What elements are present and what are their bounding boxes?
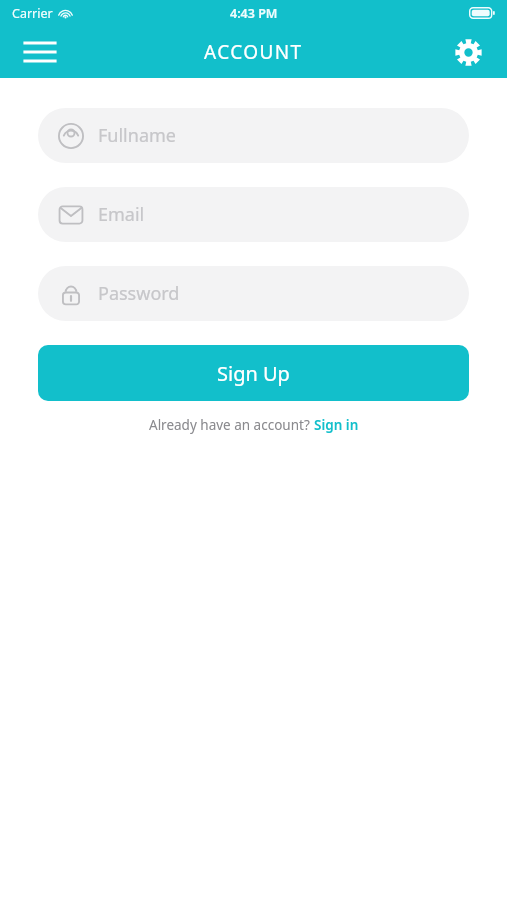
button[interactable]: Sign in xyxy=(314,416,359,434)
staticText: Email xyxy=(98,202,145,227)
staticText: Sign Up xyxy=(217,360,290,387)
staticText: Password xyxy=(98,281,180,306)
staticText: 4:43 PM xyxy=(230,5,278,22)
staticText: Sign in xyxy=(314,416,359,434)
button[interactable]: Menu xyxy=(18,30,62,74)
button[interactable]: Password xyxy=(38,266,469,321)
button[interactable]: Settings xyxy=(447,31,489,73)
button[interactable]: Sign Up xyxy=(38,345,469,401)
button[interactable]: Email xyxy=(38,187,469,242)
staticText: Already have an account? xyxy=(149,416,314,434)
staticText: ACCOUNT xyxy=(204,39,303,65)
staticText: Carrier xyxy=(12,5,53,22)
staticText: Fullname xyxy=(98,123,176,148)
button[interactable]: Fullname xyxy=(38,108,469,163)
